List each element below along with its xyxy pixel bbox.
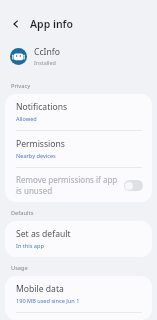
button[interactable]: Back [8, 16, 24, 32]
staticText: Permissions [16, 138, 65, 150]
staticText: In this app [16, 242, 44, 250]
button[interactable]: Notifications [5, 94, 152, 131]
staticText: Remove permissions if app is unused [16, 174, 118, 196]
staticText: Mobile data [16, 283, 64, 295]
staticText: Allowed [16, 115, 37, 123]
button[interactable]: Permissions [5, 131, 152, 168]
button[interactable]: Mobile data [5, 276, 152, 313]
staticText: Notifications [16, 101, 68, 113]
staticText: App info [30, 17, 73, 31]
staticText: Installed [34, 59, 56, 66]
staticText: Usage [11, 264, 28, 272]
staticText: Set as default [16, 228, 71, 240]
staticText: Defaults [11, 209, 34, 217]
button[interactable]: Remove permissions if app is unused [5, 168, 152, 202]
staticText: Privacy [11, 82, 31, 90]
button[interactable]: Set as default [5, 221, 152, 257]
staticText: CcInfo [34, 46, 60, 58]
button[interactable]: CcInfo [0, 43, 157, 69]
staticText: Nearby devices [16, 152, 56, 160]
staticText: 190 MB used since Jun 1 [16, 297, 80, 305]
